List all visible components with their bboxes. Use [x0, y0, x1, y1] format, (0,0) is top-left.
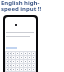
button[interactable]: [12, 64, 15, 67]
button[interactable]: [6, 52, 8, 55]
button[interactable]: [24, 60, 27, 63]
button[interactable]: [28, 64, 31, 67]
button[interactable]: [12, 52, 15, 55]
button[interactable]: [12, 68, 15, 71]
button[interactable]: [32, 56, 35, 59]
button[interactable]: [20, 56, 23, 59]
button[interactable]: [24, 68, 27, 71]
button[interactable]: [16, 60, 19, 63]
button[interactable]: [9, 52, 11, 55]
staticText: English high-: [1, 0, 40, 7]
button[interactable]: [32, 68, 35, 71]
button[interactable]: [24, 52, 27, 55]
button[interactable]: [24, 56, 27, 59]
staticText: speed input !!: [1, 5, 42, 13]
button[interactable]: [16, 64, 19, 67]
button[interactable]: [20, 60, 23, 63]
button[interactable]: [32, 64, 35, 67]
button[interactable]: [9, 68, 11, 71]
button[interactable]: [6, 68, 8, 71]
button[interactable]: [28, 56, 31, 59]
button[interactable]: [24, 64, 27, 67]
button[interactable]: [28, 60, 31, 63]
button[interactable]: [9, 60, 11, 63]
button[interactable]: [9, 56, 11, 59]
button[interactable]: [6, 56, 8, 59]
button[interactable]: [28, 52, 31, 55]
button[interactable]: [28, 68, 31, 71]
button[interactable]: [20, 68, 23, 71]
button[interactable]: [16, 52, 19, 55]
button[interactable]: [20, 64, 23, 67]
button[interactable]: [9, 64, 11, 67]
button[interactable]: [12, 56, 15, 59]
button[interactable]: [6, 60, 8, 63]
button[interactable]: [32, 60, 35, 63]
button[interactable]: [16, 56, 19, 59]
button[interactable]: [12, 60, 15, 63]
button[interactable]: [32, 52, 35, 55]
button[interactable]: [20, 52, 23, 55]
button[interactable]: [6, 64, 8, 67]
button[interactable]: [16, 68, 19, 71]
